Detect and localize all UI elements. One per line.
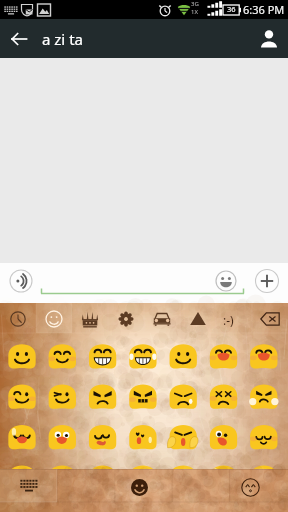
button[interactable]: Message input (41, 271, 244, 295)
button[interactable]: Text emoticons (216, 303, 252, 335)
staticText: 36 (227, 4, 236, 14)
button[interactable]: Recent (57, 469, 114, 512)
button[interactable]: Delete (252, 303, 288, 335)
button[interactable]: Nature (108, 303, 144, 335)
staticText: :-) (223, 312, 234, 328)
button[interactable]: Insert emoji (215, 270, 237, 292)
staticText: a zi ta (42, 29, 83, 49)
staticText: 6:36 PM (243, 2, 285, 17)
staticText: 3G (191, 0, 199, 8)
button[interactable]: Travel (144, 303, 180, 335)
button[interactable]: Symbols (180, 303, 216, 335)
staticText: 1X (191, 8, 198, 16)
button[interactable]: Back (0, 20, 38, 58)
button[interactable]: Contact (250, 20, 288, 58)
button[interactable]: Voice message (9, 270, 32, 293)
button[interactable]: Gestures (172, 469, 230, 512)
button[interactable]: Kaomoji (230, 469, 288, 512)
button[interactable]: Smileys (36, 303, 72, 335)
button[interactable]: Recent (0, 303, 36, 335)
button[interactable]: Favourites (72, 303, 108, 335)
button[interactable]: Add attachment (255, 269, 279, 293)
button[interactable]: Keyboard (0, 469, 57, 512)
button[interactable]: Smileys (114, 469, 172, 512)
